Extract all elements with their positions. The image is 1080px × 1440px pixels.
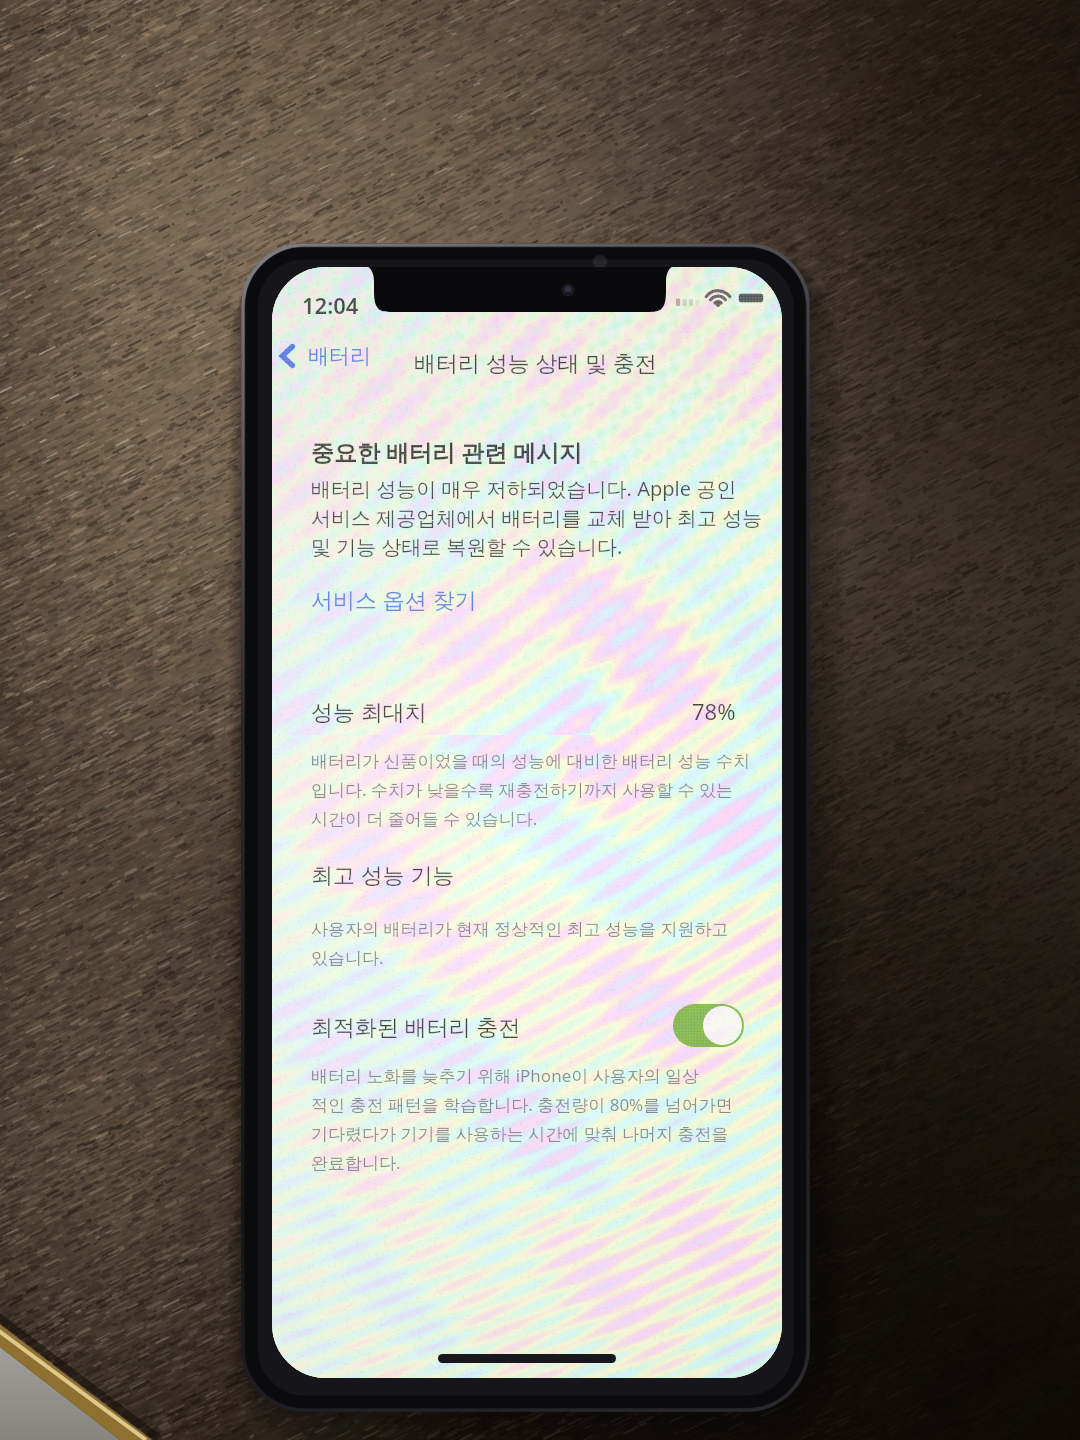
button[interactable]: 최적화된 배터리 충전 (272, 999, 782, 1052)
staticText: 최고 성능 기능 (311, 859, 455, 889)
staticText: 배터리 성능이 매우 저하되었습니다. Apple 공인 서비스 제공업체에서 … (311, 475, 763, 560)
staticText: 78% (692, 696, 736, 726)
staticText: 배터리 (308, 343, 371, 369)
button[interactable]: 서비스 옵션 찾기 (272, 568, 782, 630)
button[interactable]: 배터리 (272, 337, 381, 375)
button[interactable]: 최적화된 배터리 충전 켬 (673, 1004, 744, 1047)
staticText: 배터리 노화를 늦추기 위해 iPhone이 사용자의 일상 적인 충전 패턴을… (311, 1064, 733, 1174)
staticText: 12:04 (302, 290, 359, 320)
button[interactable]: 성능 최대치 (272, 685, 782, 736)
staticText: 배터리가 신품이었을 때의 성능에 대비한 배터리 성능 수치 입니다. 수치가… (311, 749, 750, 830)
staticText: 최적화된 배터리 충전 (311, 1011, 521, 1041)
staticText: 중요한 배터리 관련 메시지 (311, 436, 582, 467)
staticText: 성능 최대치 (311, 696, 427, 726)
staticText: 사용자의 배터리가 현재 정상적인 최고 성능을 지원하고 있습니다. (311, 917, 729, 969)
staticText: 배터리 성능 상태 및 충전 (414, 347, 657, 377)
staticText: 서비스 옵션 찾기 (311, 584, 477, 614)
